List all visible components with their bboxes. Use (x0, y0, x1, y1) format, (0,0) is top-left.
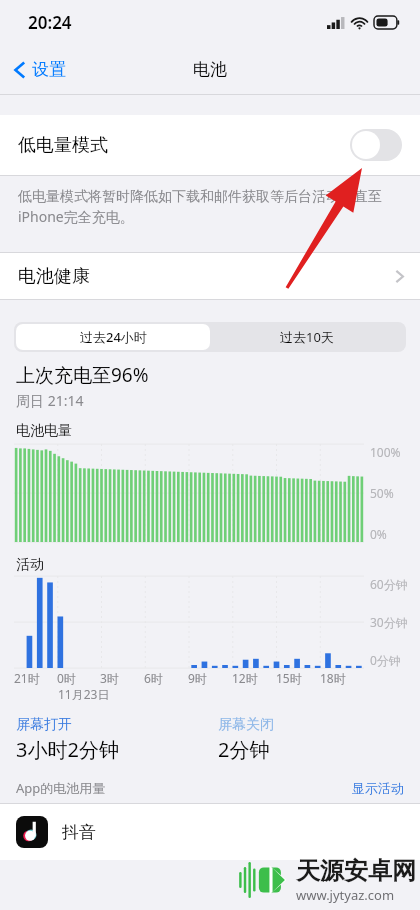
staticText: 周日 21:14 (16, 391, 84, 410)
staticText: 天源安卓网 (296, 856, 416, 886)
staticText: 50% (370, 485, 394, 501)
staticText: 屏幕关闭 (218, 716, 274, 734)
staticText: www.jytyaz.com (296, 886, 395, 904)
staticText: 显示活动 (352, 780, 404, 796)
staticText: 100% (370, 444, 401, 460)
staticText: 电池电量 (16, 422, 72, 440)
staticText: 20:24 (28, 11, 72, 34)
staticText: 低电量模式 (18, 134, 108, 157)
staticText: 低电量模式将暂时降低如下载和邮件获取等后台活动，直至 iPhone完全充电。 (18, 186, 394, 226)
staticText: 电池健康 (18, 265, 90, 288)
staticText: 活动 (16, 556, 44, 574)
staticText: 上次充电至96% (16, 362, 149, 388)
staticText: 12时 (232, 670, 258, 686)
staticText: 0时 (57, 670, 76, 686)
button[interactable]: 低电量模式开关 (350, 129, 402, 161)
staticText: 15时 (276, 670, 302, 686)
staticText: 6时 (144, 670, 163, 686)
staticText: 0% (370, 526, 387, 542)
button[interactable]: 显示活动 (352, 780, 404, 796)
staticText: 30分钟 (370, 614, 408, 630)
staticText: 3时 (100, 670, 119, 686)
staticText: 11月23日 (58, 686, 110, 702)
button[interactable]: 电池健康 (0, 253, 420, 299)
staticText: 过去10天 (280, 328, 334, 346)
staticText: 60分钟 (370, 576, 408, 592)
staticText: 设置 (32, 59, 66, 80)
staticText: 过去24小时 (80, 328, 147, 346)
staticText: App的电池用量 (16, 779, 106, 797)
staticText: 21时 (14, 670, 40, 686)
staticText: 0分钟 (370, 652, 401, 668)
staticText: 屏幕打开 (16, 716, 72, 734)
staticText: 3小时2分钟 (16, 736, 119, 763)
staticText: 抖音 (62, 822, 96, 843)
button[interactable]: 抖音 (0, 804, 420, 860)
staticText: 电池 (193, 59, 227, 80)
staticText: 2分钟 (218, 736, 270, 763)
button[interactable]: 设置 (10, 53, 70, 86)
button[interactable]: 过去10天 (210, 324, 404, 350)
staticText: 18时 (320, 670, 346, 686)
button[interactable]: 低电量模式 (0, 115, 420, 175)
staticText: 9时 (188, 670, 207, 686)
button[interactable]: 过去24小时 (16, 324, 210, 350)
